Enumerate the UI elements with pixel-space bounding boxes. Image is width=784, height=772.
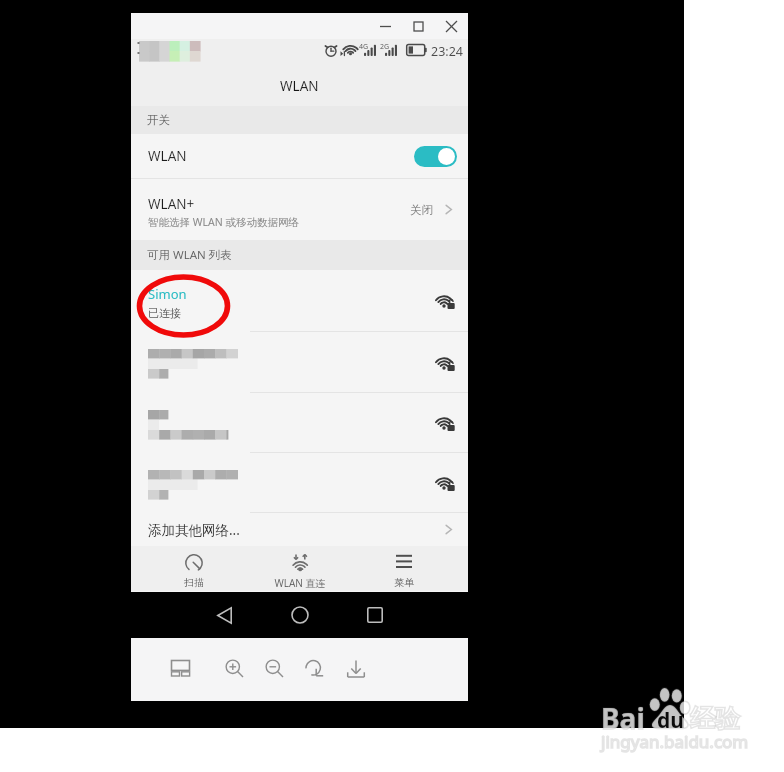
button[interactable]: WLAN 直连	[255, 546, 345, 591]
button[interactable]: WLAN+	[131, 179, 468, 240]
staticText: WLAN+	[148, 195, 195, 213]
staticText: jingyan.baidu.com	[601, 730, 749, 753]
button[interactable]: Close	[435, 13, 468, 39]
button[interactable]: 添加其他网络...	[131, 513, 468, 546]
button[interactable]: WLAN switch, on	[414, 146, 457, 167]
staticText: WLAN 直连	[274, 576, 326, 590]
staticText: du	[657, 706, 684, 735]
staticText: 已连接	[148, 306, 181, 320]
staticText: 23:24	[431, 43, 463, 60]
button[interactable]: Simon	[131, 270, 468, 331]
button[interactable]: 菜单	[359, 546, 449, 591]
button[interactable]: Download	[342, 654, 370, 682]
button[interactable]: Minimize	[369, 13, 402, 39]
button[interactable]	[131, 453, 468, 512]
staticText: 经验	[690, 703, 740, 734]
staticText: WLAN	[280, 77, 319, 95]
button[interactable]: Recent apps	[351, 592, 398, 638]
staticText: 经验	[690, 703, 740, 734]
staticText: 开关	[147, 113, 170, 127]
button[interactable]	[131, 332, 468, 392]
staticText: 智能选择 WLAN 或移动数据网络	[148, 215, 299, 229]
button[interactable]: Maximize	[402, 13, 435, 39]
staticText: jingyan.baidu.com	[601, 730, 749, 753]
staticText: WLAN	[148, 147, 187, 165]
button[interactable]: WLAN	[131, 134, 468, 178]
button[interactable]: Zoom out	[260, 654, 288, 682]
staticText: 菜单	[394, 576, 414, 589]
button[interactable]: Back	[201, 592, 248, 638]
staticText: Bai	[601, 699, 645, 737]
staticText: Simon	[148, 285, 187, 303]
staticText: 扫描	[184, 576, 204, 589]
button[interactable]: Screen layout	[166, 654, 194, 682]
staticText: 2G	[380, 42, 390, 52]
button[interactable]: Zoom in	[220, 654, 248, 682]
button[interactable]: Rotate	[301, 654, 329, 682]
staticText: Bai	[601, 699, 645, 737]
staticText: 可用 WLAN 列表	[147, 247, 232, 263]
staticText: 4G	[359, 42, 369, 52]
button[interactable]: 扫描	[149, 546, 239, 591]
staticText: 关闭	[410, 203, 433, 217]
staticText: 添加其他网络...	[148, 521, 240, 539]
button[interactable]	[131, 393, 468, 452]
button[interactable]: Home	[276, 592, 323, 638]
